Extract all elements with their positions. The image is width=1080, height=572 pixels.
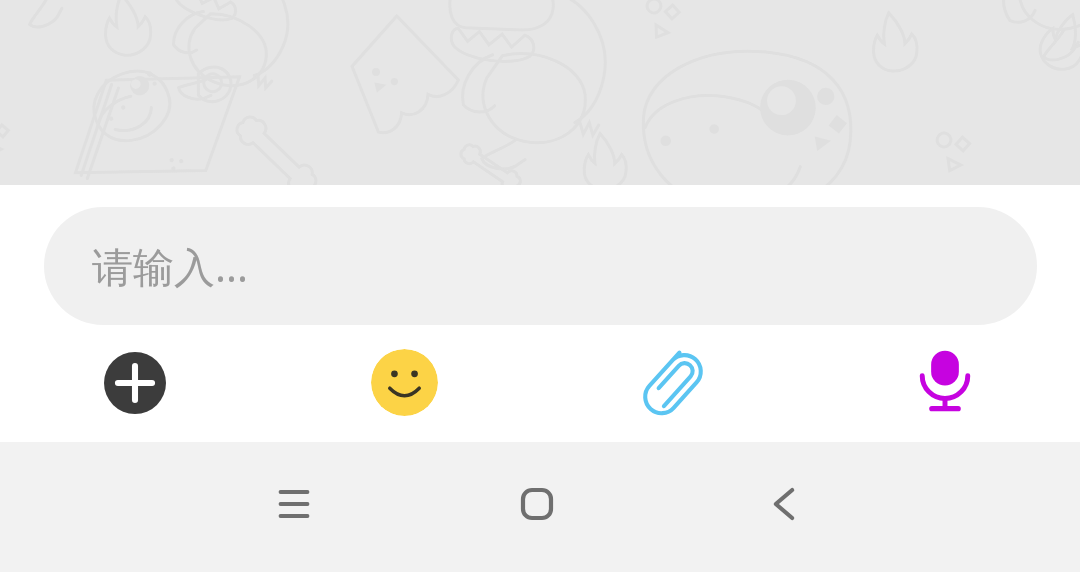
button[interactable]: Add <box>104 352 166 414</box>
button[interactable]: Recent apps <box>254 464 334 544</box>
button[interactable]: Voice message <box>912 347 978 413</box>
staticText: 请输入... <box>92 238 248 294</box>
button[interactable]: Emoji <box>371 349 438 416</box>
button[interactable]: Attach file <box>636 345 712 421</box>
button[interactable]: Back <box>744 464 824 544</box>
button[interactable]: Home <box>497 464 577 544</box>
button[interactable]: 请输入... <box>44 207 1037 325</box>
